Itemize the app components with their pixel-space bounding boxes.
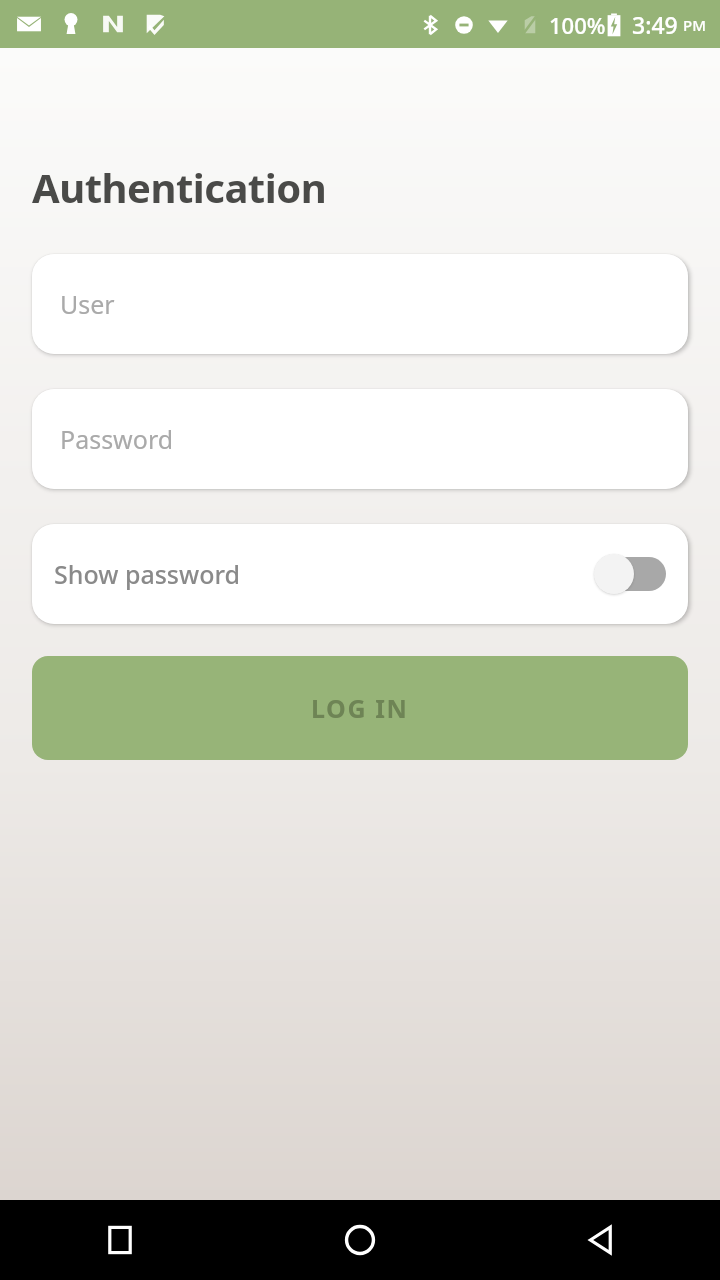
button[interactable]: User bbox=[32, 254, 688, 354]
staticText: Authentication bbox=[32, 160, 327, 214]
button[interactable]: Show password bbox=[32, 524, 688, 624]
button[interactable]: LOG IN bbox=[32, 656, 688, 760]
staticText: User bbox=[60, 287, 115, 321]
button[interactable]: Back bbox=[480, 1200, 720, 1280]
staticText: Password bbox=[60, 422, 174, 456]
staticText: Show password bbox=[54, 557, 241, 591]
button[interactable]: Recents bbox=[0, 1200, 240, 1280]
staticText: 100% bbox=[549, 10, 606, 40]
staticText: PM bbox=[683, 15, 706, 35]
button[interactable]: Show password toggle bbox=[594, 552, 666, 596]
button[interactable]: Home bbox=[240, 1200, 480, 1280]
staticText: LOG IN bbox=[311, 691, 409, 725]
button[interactable]: Password bbox=[32, 389, 688, 489]
staticText: 3:49 bbox=[632, 9, 678, 40]
